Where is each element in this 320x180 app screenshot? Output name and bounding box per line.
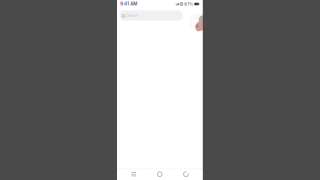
button[interactable]: Profile <box>189 13 207 31</box>
staticText: 87% <box>184 2 193 6</box>
staticText: 9:41 AM <box>120 1 137 7</box>
staticText: Search <box>127 14 138 17</box>
button[interactable]: Saved <box>173 168 199 180</box>
button[interactable]: Feed <box>121 168 147 180</box>
button[interactable]: Explore <box>147 168 173 180</box>
button[interactable]: Search <box>119 10 183 21</box>
